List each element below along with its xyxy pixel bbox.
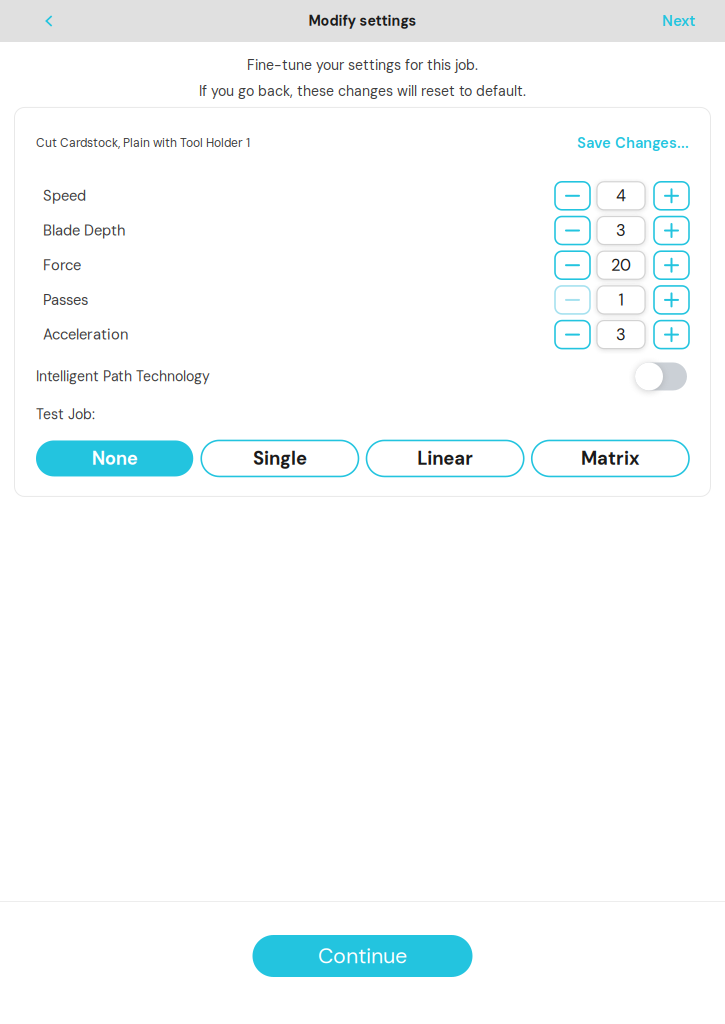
button[interactable]: Back — [28, 0, 70, 42]
button[interactable]: Linear — [366, 440, 524, 476]
staticText: 4 — [616, 185, 626, 206]
staticText: Passes — [43, 290, 88, 309]
button[interactable]: Next — [652, 0, 705, 42]
staticText: Speed — [43, 186, 86, 205]
button[interactable]: Decrease Speed — [555, 182, 590, 210]
staticText: Save Changes... — [577, 133, 689, 152]
staticText: Next — [662, 11, 695, 31]
button[interactable]: Matrix — [532, 440, 689, 476]
staticText: None — [92, 446, 138, 470]
staticText: Intelligent Path Technology — [36, 367, 210, 385]
button[interactable]: Decrease Force — [555, 251, 590, 279]
staticText: 3 — [616, 324, 626, 345]
button[interactable]: Decrease Passes — [555, 286, 590, 314]
staticText: 20 — [611, 255, 631, 276]
button[interactable]: Decrease Blade Depth — [555, 216, 590, 244]
button[interactable]: Single — [201, 440, 358, 476]
staticText: Cut Cardstock, Plain with Tool Holder 1 — [36, 135, 250, 151]
button[interactable]: None — [36, 440, 193, 476]
button[interactable]: Increase Speed — [654, 182, 689, 210]
button[interactable]: Continue — [252, 935, 472, 977]
button[interactable]: Increase Acceleration — [654, 321, 689, 349]
staticText: Linear — [417, 446, 473, 470]
staticText: 1 — [618, 289, 623, 310]
button[interactable]: Decrease Acceleration — [555, 321, 590, 349]
staticText: If you go back, these changes will reset… — [199, 82, 526, 100]
staticText: Test Job: — [36, 405, 95, 423]
button[interactable]: Intelligent Path Technology — [635, 361, 689, 391]
staticText: 3 — [616, 220, 626, 241]
button[interactable]: Save Changes... — [577, 133, 689, 152]
staticText: Single — [253, 446, 307, 470]
staticText: Force — [43, 256, 81, 275]
staticText: Modify settings — [308, 12, 416, 30]
staticText: Blade Depth — [43, 221, 125, 240]
staticText: Continue — [318, 942, 407, 970]
button[interactable]: Increase Force — [654, 251, 689, 279]
button[interactable]: Increase Passes — [654, 286, 689, 314]
staticText: Acceleration — [43, 325, 128, 344]
staticText: Fine-tune your settings for this job. — [247, 56, 478, 74]
staticText: Matrix — [581, 446, 640, 470]
button[interactable]: Increase Blade Depth — [654, 216, 689, 244]
